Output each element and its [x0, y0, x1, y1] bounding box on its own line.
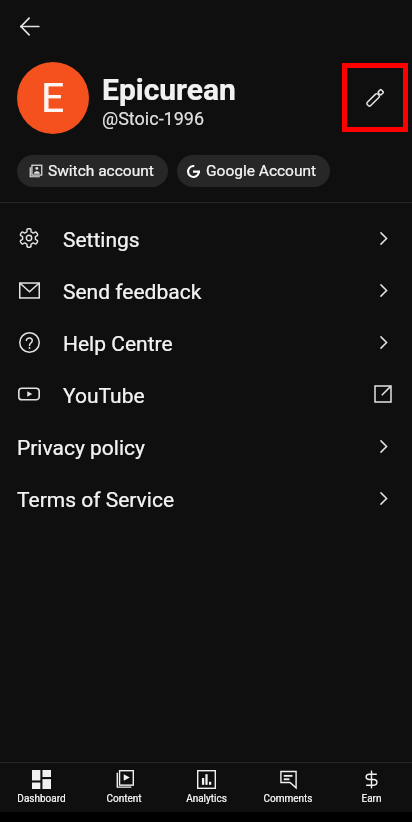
- staticText: Analytics: [186, 793, 227, 805]
- button[interactable]: Content: [83, 763, 165, 812]
- button[interactable]: Send feedback: [0, 266, 412, 318]
- button[interactable]: Dashboard: [0, 763, 82, 812]
- staticText: Google Account: [206, 162, 317, 180]
- staticText: Epicurean: [102, 72, 236, 107]
- staticText: Terms of Service: [17, 488, 175, 513]
- button[interactable]: Analytics: [165, 763, 247, 812]
- button[interactable]: Comments: [247, 763, 329, 812]
- staticText: Earn: [361, 793, 382, 805]
- staticText: Privacy policy: [17, 436, 145, 461]
- button[interactable]: Edit: [342, 63, 408, 132]
- button[interactable]: Privacy policy: [0, 422, 412, 474]
- staticText: Comments: [263, 793, 313, 805]
- staticText: E: [41, 74, 65, 122]
- button[interactable]: Back: [7, 4, 51, 48]
- button[interactable]: Terms of Service: [0, 474, 412, 526]
- button[interactable]: Settings: [0, 214, 412, 266]
- button[interactable]: YouTube: [0, 370, 412, 422]
- staticText: Help Centre: [63, 332, 173, 357]
- button[interactable]: Google Account: [177, 155, 330, 187]
- staticText: Dashboard: [17, 793, 66, 805]
- staticText: Send feedback: [63, 280, 202, 305]
- staticText: Content: [106, 793, 142, 805]
- button[interactable]: Switch account: [17, 155, 168, 187]
- staticText: Switch account: [48, 162, 154, 180]
- button[interactable]: Earn: [330, 763, 412, 812]
- staticText: YouTube: [63, 384, 145, 409]
- staticText: @Stoic-1996: [102, 108, 205, 129]
- staticText: Settings: [63, 228, 140, 253]
- button[interactable]: Help Centre: [0, 318, 412, 370]
